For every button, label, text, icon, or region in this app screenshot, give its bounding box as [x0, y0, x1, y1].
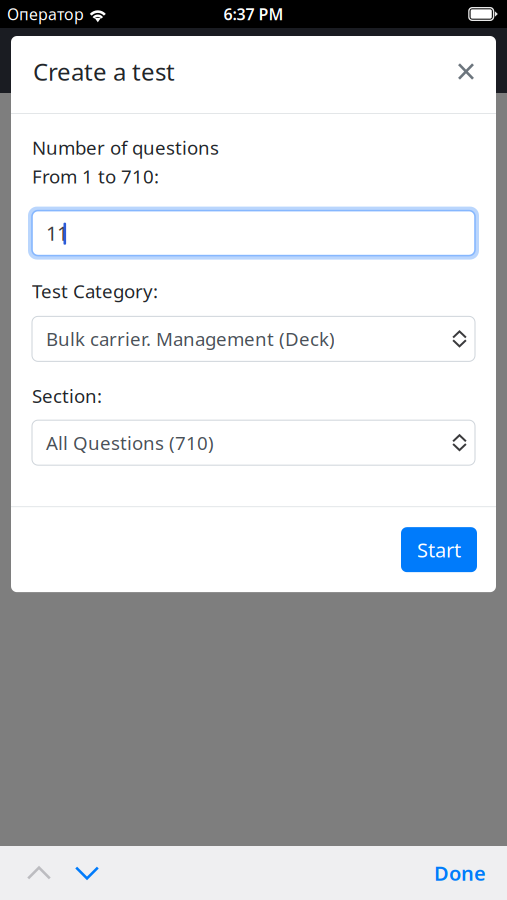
staticText: Test Category:	[32, 279, 158, 303]
button[interactable]: Bulk carrier. Management (Deck)	[32, 316, 475, 361]
staticText: Bulk carrier. Management (Deck)	[46, 326, 335, 351]
staticText: Start	[417, 536, 461, 563]
staticText: Done	[434, 860, 486, 886]
staticText: 11	[46, 220, 68, 246]
staticText: Оператор	[7, 3, 84, 25]
staticText: From 1 to 710:	[32, 164, 159, 189]
button[interactable]: Done	[423, 846, 497, 900]
staticText: All Questions (710)	[46, 430, 214, 455]
staticText: Number of questions	[32, 135, 219, 160]
button[interactable]: All Questions (710)	[32, 420, 475, 465]
button[interactable]: Previous field	[15, 846, 63, 900]
staticText: Create a test	[33, 56, 175, 87]
button[interactable]: Start	[401, 527, 477, 572]
staticText: Section:	[32, 383, 102, 408]
button[interactable]: Close	[448, 53, 484, 89]
staticText: 6:37 PM	[223, 3, 283, 25]
button[interactable]: Next field	[63, 846, 111, 900]
